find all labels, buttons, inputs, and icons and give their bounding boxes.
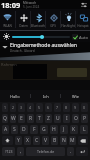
- button[interactable]: H: [50, 125, 58, 134]
- button[interactable]: Eingabemethode auswählen: [2, 42, 88, 52]
- staticText: 9: [74, 105, 77, 110]
- staticText: Bluetooth: [31, 24, 45, 28]
- button[interactable]: D: [20, 125, 28, 134]
- staticText: 7: [56, 105, 59, 110]
- button[interactable]: 6: [45, 103, 52, 112]
- staticText: 6: [47, 105, 50, 110]
- button[interactable]: X: [24, 136, 31, 145]
- staticText: D: [22, 126, 26, 133]
- button[interactable]: V: [42, 136, 49, 145]
- staticText: B: [53, 137, 57, 144]
- button[interactable]: W: [10, 114, 16, 123]
- button[interactable]: K: [70, 125, 78, 134]
- staticText: Z: [47, 115, 50, 122]
- button[interactable]: 3: [18, 103, 25, 112]
- button[interactable]: C: [33, 136, 40, 145]
- staticText: G: [42, 126, 46, 133]
- button[interactable]: T: [36, 114, 43, 123]
- button[interactable]: Shift: [2, 136, 13, 145]
- staticText: 8: [65, 105, 68, 110]
- button[interactable]: S: [11, 125, 18, 134]
- button[interactable]: Settings: [80, 1, 88, 9]
- button[interactable]: O: [72, 114, 79, 123]
- button[interactable]: Hallo: [0, 90, 30, 102]
- button[interactable]: J: [60, 125, 68, 134]
- button[interactable]: 7: [54, 103, 61, 112]
- button[interactable]: Daten: [16, 9, 30, 30]
- button[interactable]: 9: [72, 103, 79, 112]
- button[interactable]: Telefon.de: [26, 147, 65, 156]
- button[interactable]: Z: [45, 114, 52, 123]
- staticText: 1: [4, 105, 7, 110]
- staticText: O: [74, 115, 78, 122]
- button[interactable]: Auto: [72, 34, 88, 40]
- staticText: H: [52, 126, 56, 133]
- button[interactable]: N: [60, 136, 67, 145]
- button[interactable]: G: [40, 125, 48, 134]
- button[interactable]: 8: [63, 103, 70, 112]
- button[interactable]: M: [69, 136, 76, 145]
- staticText: Deutsch - Gboard: [10, 49, 35, 52]
- button[interactable]: WLAN: [0, 9, 15, 30]
- button[interactable]: GPS: [46, 9, 60, 30]
- button[interactable]: 4: [27, 103, 34, 112]
- button[interactable]: R: [27, 114, 34, 123]
- button[interactable]: Hotspot: [76, 9, 90, 30]
- button[interactable]: ?123: [2, 147, 15, 156]
- button[interactable]: Bluetooth: [31, 9, 45, 30]
- button[interactable]: 2: [10, 103, 16, 112]
- button[interactable]: 1: [2, 103, 8, 112]
- button[interactable]: B: [51, 136, 58, 145]
- staticText: C: [35, 137, 39, 144]
- button[interactable]: Enter: [76, 147, 88, 156]
- button[interactable]: 0: [81, 103, 88, 112]
- staticText: Telefon.de: [37, 149, 55, 154]
- staticText: W: [11, 115, 16, 122]
- staticText: 5: [38, 105, 41, 110]
- button[interactable]: Q: [2, 114, 8, 123]
- staticText: Rahmen: [1, 62, 17, 67]
- staticText: Hallo: [10, 94, 20, 99]
- staticText: 3: [20, 105, 23, 110]
- staticText: A: [4, 126, 8, 133]
- staticText: 4: [29, 105, 32, 110]
- staticText: Hotspot: [77, 24, 89, 28]
- staticText: R: [29, 115, 33, 122]
- staticText: L: [83, 126, 86, 133]
- staticText: Y: [17, 137, 20, 144]
- staticText: K: [72, 126, 76, 133]
- staticText: Ich: [43, 94, 49, 99]
- staticText: ?123: [5, 149, 13, 154]
- button[interactable]: Wie: [61, 90, 90, 102]
- staticText: .: [70, 148, 72, 155]
- button[interactable]: A: [2, 125, 9, 134]
- button[interactable]: Backspace: [78, 136, 88, 145]
- button[interactable]: F: [30, 125, 38, 134]
- staticText: N: [62, 137, 66, 144]
- button[interactable]: P: [81, 114, 88, 123]
- button[interactable]: Y: [15, 136, 22, 145]
- button[interactable]: L: [80, 125, 88, 134]
- button[interactable]: U: [54, 114, 61, 123]
- button[interactable]: [12, 33, 70, 41]
- staticText: 5. Juni 2024: [23, 5, 40, 9]
- staticText: WLAN: [3, 24, 12, 28]
- staticText: Daten: [19, 24, 28, 28]
- staticText: Flashlight: [61, 24, 75, 28]
- staticText: X: [26, 137, 29, 144]
- staticText: E: [20, 115, 23, 122]
- button[interactable]: 5: [36, 103, 43, 112]
- staticText: ,: [20, 148, 22, 155]
- staticText: 18:09: [1, 0, 21, 9]
- staticText: P: [83, 115, 87, 122]
- staticText: M: [70, 137, 75, 144]
- button[interactable]: Flashlight: [61, 9, 75, 30]
- staticText: T: [38, 115, 41, 122]
- button[interactable]: ,: [17, 147, 24, 156]
- staticText: S: [13, 126, 16, 133]
- button[interactable]: Ich: [31, 90, 60, 102]
- staticText: Q: [3, 115, 7, 122]
- button[interactable]: I: [63, 114, 70, 123]
- button[interactable]: .: [67, 147, 74, 156]
- button[interactable]: E: [18, 114, 25, 123]
